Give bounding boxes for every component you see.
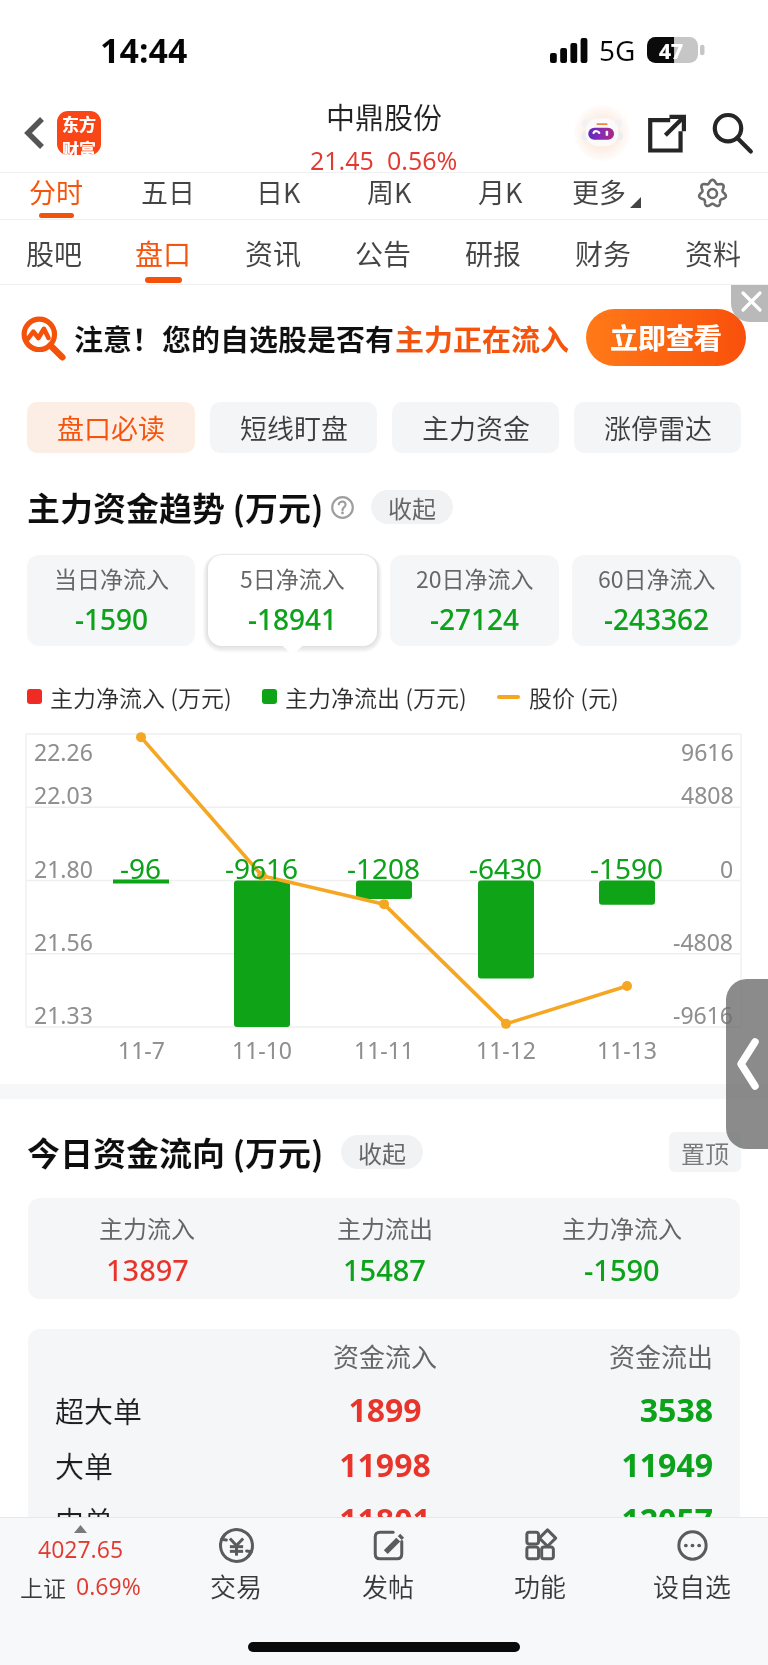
staticText: 盘口 [135,233,192,274]
staticText: 21.56 [34,926,93,957]
staticText: 5G [599,31,636,69]
staticText: 主力净流出 (万元) [285,680,467,713]
staticText: 4027.65 [38,1533,124,1564]
button[interactable]: 日K [223,173,334,219]
staticText: 资料 [685,233,742,274]
button[interactable]: 五日 [112,173,223,219]
button[interactable]: 资料 [658,220,768,284]
button[interactable]: 60日净流入 [572,555,741,646]
button[interactable]: 资讯 [218,220,328,284]
staticText: 财务 [575,233,632,274]
staticText: 47 [659,37,684,63]
button[interactable]: 盘口 [109,220,218,284]
staticText: -1590 [584,1250,660,1289]
button[interactable]: 分时 [0,173,112,219]
staticText: 22.03 [34,779,93,810]
staticText: 财富 [62,136,96,155]
staticText: -27124 [430,600,520,638]
staticText: 0 [720,853,734,884]
staticText: 1899 [235,1388,535,1432]
staticText: -6430 [469,849,543,887]
button[interactable]: AI assistant [573,104,631,162]
staticText: 0.69% [76,1570,141,1601]
button[interactable]: 大单 [28,1437,740,1492]
staticText: 5日净流入 [240,561,345,594]
button[interactable]: 收起 [371,490,453,524]
staticText: -1590 [75,600,149,638]
button[interactable]: 置顶 [669,1132,741,1172]
staticText: -9616 [225,849,299,887]
button[interactable]: 功能 [464,1518,616,1599]
button[interactable]: 5日净流入 [208,555,377,646]
button[interactable]: 盘口必读 [27,402,195,453]
button[interactable]: 设自选 [616,1518,768,1599]
staticText: 功能 [514,1567,567,1605]
button[interactable]: 更多 [556,173,673,219]
staticText: 资讯 [245,233,302,274]
button[interactable]: 立即查看 [586,309,746,366]
staticText: 12057 [621,1498,713,1542]
staticText: 更多 [572,172,626,211]
staticText: -243362 [604,600,710,638]
staticText: 14:44 [100,27,188,73]
button[interactable]: 发帖 [312,1518,464,1599]
staticText: 发帖 [362,1567,415,1605]
button[interactable]: Search [705,106,759,160]
staticText: 收起 [358,1135,406,1169]
staticText: 盘口必读 [57,408,165,447]
staticText: 主力流入 [99,1210,195,1245]
staticText: 置顶 [681,1135,729,1170]
button[interactable]: Back [9,107,61,159]
button[interactable]: Close ad [731,285,768,322]
button[interactable]: 20日净流入 [390,555,559,646]
staticText: 主力资金趋势 (万元) [27,483,324,531]
staticText: 11801 [235,1498,535,1542]
staticText: 13897 [106,1250,189,1289]
button[interactable]: 超大单 [28,1382,740,1437]
staticText: 周K [367,172,412,211]
button[interactable]: 4027.65 [0,1518,160,1599]
button[interactable]: 主力资金 [392,402,559,453]
button[interactable]: 当日净流入 [27,555,195,646]
button[interactable]: 涨停雷达 [574,402,741,453]
staticText: 资金流出 [608,1337,713,1375]
staticText: 主力资金 [422,408,530,447]
button[interactable]: 短线盯盘 [210,402,377,453]
staticText: 今日资金流向 (万元) [27,1128,324,1176]
staticText: 21.33 [34,999,93,1030]
button[interactable]: 股吧 [0,220,109,284]
staticText: 21.80 [34,853,93,884]
button[interactable]: 公告 [328,220,438,284]
button[interactable]: 中单 [28,1492,740,1547]
staticText: 涨停雷达 [604,408,712,447]
button[interactable]: 月K [445,173,556,219]
staticText: 交易 [210,1567,263,1605]
staticText: 3538 [639,1388,713,1432]
button[interactable]: 交易 [160,1518,312,1599]
button[interactable]: East Money logo [57,111,101,155]
button[interactable]: Open side panel [726,979,768,1149]
staticText: 月K [478,172,523,211]
staticText: 15487 [343,1250,426,1289]
staticText: 4808 [681,779,734,810]
button[interactable]: Share [639,106,693,160]
staticText: 股价 (元) [529,680,619,713]
staticText: 11-12 [476,1034,537,1065]
staticText: 9616 [681,736,734,767]
staticText: 超大单 [55,1389,143,1431]
staticText: 分时 [29,172,83,211]
staticText: 五日 [141,172,195,211]
button[interactable]: Settings [673,173,768,219]
button[interactable]: 研报 [438,220,548,284]
staticText: -18941 [248,600,338,638]
button[interactable]: 周K [334,173,445,219]
button[interactable]: 收起 [341,1135,423,1169]
staticText: 股吧 [26,233,83,274]
staticText: 日K [256,172,301,211]
staticText: 22.26 [34,736,93,767]
staticText: 立即查看 [610,317,723,358]
staticText: -96 [120,849,162,887]
staticText: 11949 [621,1443,713,1487]
button[interactable]: 财务 [548,220,658,284]
staticText: 11-10 [232,1034,293,1065]
